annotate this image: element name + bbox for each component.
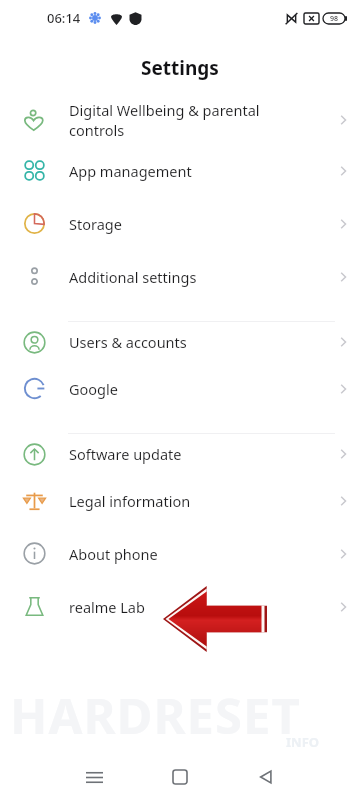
button[interactable]: About phone (0, 527, 360, 580)
button[interactable]: Back (252, 763, 280, 791)
staticText: Additional settings (69, 267, 325, 287)
staticText: 98 (330, 14, 339, 24)
button[interactable]: Software update (0, 434, 360, 474)
button[interactable]: Google (0, 362, 360, 415)
staticText: Storage (69, 214, 325, 234)
button[interactable]: Recent apps (80, 763, 108, 791)
button[interactable]: App management (0, 144, 360, 197)
staticText: Digital Wellbeing & parental controls (69, 100, 325, 141)
staticText: Settings (141, 55, 219, 81)
staticText: Google (69, 379, 325, 399)
button[interactable]: Legal information (0, 474, 360, 527)
button[interactable]: realme Lab (0, 580, 360, 633)
staticText: About phone (69, 544, 325, 564)
button[interactable]: Storage (0, 197, 360, 250)
staticText: Software update (69, 444, 325, 464)
staticText: HARDRESET (10, 682, 301, 749)
staticText: INFO (286, 733, 320, 751)
button[interactable]: Users & accounts (0, 322, 360, 362)
button[interactable]: Additional settings (0, 250, 360, 303)
staticText: App management (69, 161, 325, 181)
staticText: Users & accounts (69, 332, 325, 352)
staticText: realme Lab (69, 597, 325, 617)
staticText: 06:14 (47, 9, 81, 27)
button[interactable]: Digital Wellbeing & parental controls (0, 96, 360, 144)
button[interactable]: Home (166, 763, 194, 791)
staticText: Legal information (69, 491, 325, 511)
